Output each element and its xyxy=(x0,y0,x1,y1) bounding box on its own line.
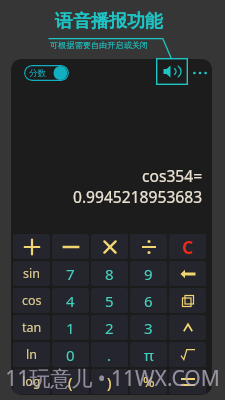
button[interactable]: Voice broadcast xyxy=(156,58,188,85)
staticText: cos354= xyxy=(142,165,203,186)
staticText: 7 xyxy=(66,264,75,284)
staticText: 1 xyxy=(66,318,75,338)
button[interactable]: sin xyxy=(13,261,50,286)
staticText: 语音播报功能 xyxy=(55,10,163,33)
button[interactable]: More options xyxy=(192,65,208,81)
staticText: . xyxy=(107,345,112,365)
staticText: 2 xyxy=(105,318,114,338)
button[interactable]: % xyxy=(130,369,167,394)
button[interactable]: 5 xyxy=(91,288,128,313)
staticText: 6 xyxy=(144,291,153,311)
staticText: π xyxy=(144,345,154,365)
button[interactable]: 2 xyxy=(91,315,128,340)
button[interactable]: 7 xyxy=(52,261,89,286)
button[interactable]: 8 xyxy=(91,261,128,286)
staticText: % xyxy=(143,372,155,391)
button[interactable]: plus xyxy=(13,234,50,259)
button[interactable]: 3 xyxy=(130,315,167,340)
staticText: 0.9945218953683 xyxy=(73,186,203,207)
button[interactable]: 4 xyxy=(52,288,89,313)
button[interactable]: sqrt xyxy=(169,342,206,367)
staticText: C xyxy=(182,235,194,259)
button[interactable]: back xyxy=(169,261,206,286)
button[interactable]: π xyxy=(130,342,167,367)
staticText: cos xyxy=(22,292,42,309)
staticText: 4 xyxy=(66,291,75,311)
button[interactable]: tan xyxy=(13,315,50,340)
staticText: 分数 xyxy=(29,68,47,79)
staticText: 9 xyxy=(144,264,153,284)
button[interactable]: caret xyxy=(169,315,206,340)
button[interactable]: 6 xyxy=(130,288,167,313)
staticText: 5 xyxy=(105,291,114,311)
button[interactable]: cos xyxy=(13,288,50,313)
staticText: 3 xyxy=(144,318,153,338)
button[interactable]: times xyxy=(91,234,128,259)
button[interactable]: divide xyxy=(130,234,167,259)
button[interactable]: minus xyxy=(52,234,89,259)
staticText: 可根据需要自由开启或关闭 xyxy=(50,40,149,50)
button[interactable]: ( xyxy=(52,369,89,394)
button[interactable]: ln xyxy=(13,342,50,367)
button[interactable]: 9 xyxy=(130,261,167,286)
staticText: ) xyxy=(107,372,112,392)
staticText: ( xyxy=(68,372,73,392)
button[interactable]: 分数 xyxy=(24,65,69,81)
button[interactable]: eq xyxy=(169,369,206,394)
staticText: ln xyxy=(26,346,37,363)
button[interactable]: log xyxy=(13,369,50,394)
button[interactable]: . xyxy=(91,342,128,367)
staticText: sin xyxy=(23,265,40,282)
staticText: 8 xyxy=(105,264,114,284)
button[interactable]: ) xyxy=(91,369,128,394)
staticText: 11玩意儿 • 11WX.COM xyxy=(0,364,225,393)
button[interactable]: 0 xyxy=(52,342,89,367)
button[interactable]: C xyxy=(169,234,206,259)
staticText: tan xyxy=(22,319,42,336)
button[interactable]: copy xyxy=(169,288,206,313)
staticText: log xyxy=(22,373,41,390)
staticText: 0 xyxy=(66,345,75,365)
button[interactable]: 1 xyxy=(52,315,89,340)
